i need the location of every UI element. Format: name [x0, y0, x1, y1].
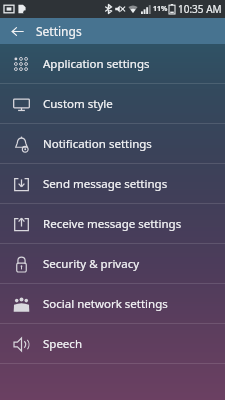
staticText: Security & privacy — [43, 256, 140, 272]
staticText: Application settings — [43, 56, 150, 72]
button[interactable]: Custom style — [0, 84, 225, 123]
staticText: Speech — [43, 336, 82, 352]
staticText: 10:35 AM — [178, 2, 222, 16]
staticText: Receive message settings — [43, 216, 182, 232]
button[interactable]: Social network settings — [0, 284, 225, 323]
button[interactable]: Notification settings — [0, 124, 225, 163]
button[interactable]: Speech — [0, 324, 225, 363]
button[interactable]: Receive message settings — [0, 204, 225, 243]
staticText: Settings — [36, 23, 82, 39]
staticText: 11% — [153, 4, 168, 14]
button[interactable]: Send message settings — [0, 164, 225, 203]
button[interactable]: Back — [8, 22, 26, 40]
button[interactable]: Application settings — [0, 44, 225, 83]
staticText: Social network settings — [43, 296, 168, 312]
staticText: Custom style — [43, 96, 113, 112]
staticText: Send message settings — [43, 176, 168, 192]
staticText: Notification settings — [43, 136, 152, 152]
button[interactable]: Security & privacy — [0, 244, 225, 283]
